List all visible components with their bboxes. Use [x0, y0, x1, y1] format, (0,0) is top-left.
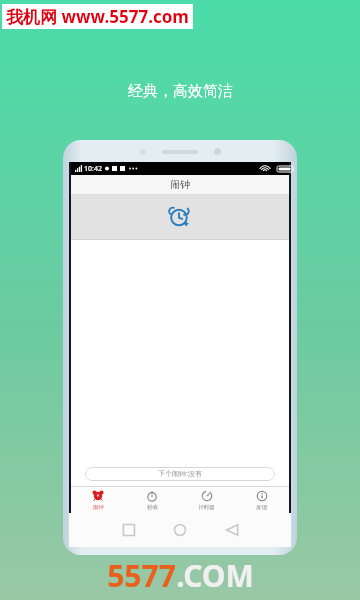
staticText: 经典，高效简洁 — [128, 82, 233, 101]
staticText: 秒表 — [147, 504, 158, 511]
staticText: 发现 — [256, 504, 267, 511]
staticText: 5577 — [107, 555, 176, 596]
button[interactable]: Add alarm — [71, 195, 289, 239]
staticText: .COM — [176, 555, 254, 596]
button[interactable]: 计时器 — [179, 487, 234, 513]
button[interactable]: 秒表 — [125, 487, 179, 513]
staticText: 闹钟 — [170, 178, 190, 191]
button[interactable]: 闹钟 — [71, 487, 125, 513]
staticText: 计时器 — [198, 504, 215, 511]
button[interactable]: 下个闹钟:没有 — [85, 467, 275, 481]
staticText: 10:42 — [84, 164, 102, 174]
button[interactable]: 发现 — [234, 487, 289, 513]
staticText: 我机网 www.5577.com — [6, 5, 189, 28]
staticText: 下个闹钟:没有 — [158, 469, 202, 479]
staticText: 闹钟 — [93, 504, 104, 511]
